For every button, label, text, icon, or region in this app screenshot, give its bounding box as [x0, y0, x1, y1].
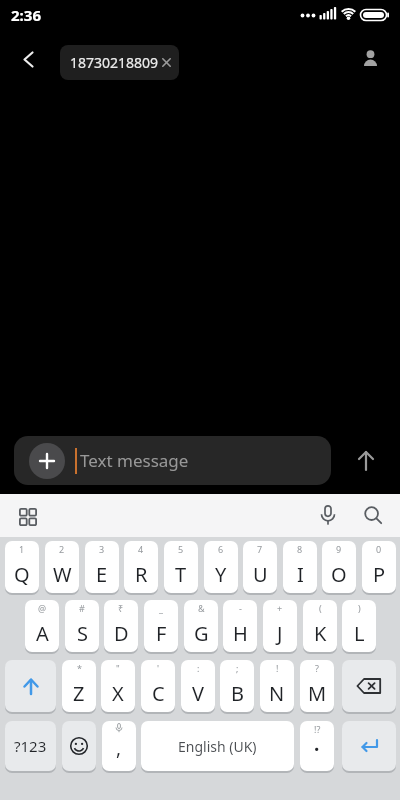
staticText: O: [331, 561, 347, 588]
button[interactable]: _: [144, 600, 178, 652]
staticText: B: [231, 680, 244, 707]
staticText: 7: [257, 543, 263, 555]
staticText: #: [79, 602, 85, 614]
staticText: X: [112, 680, 124, 707]
staticText: I: [297, 561, 304, 588]
button[interactable]: #: [65, 600, 99, 652]
staticText: 6: [218, 543, 224, 555]
staticText: D: [114, 620, 129, 647]
staticText: English (UK): [178, 737, 257, 756]
button[interactable]: [62, 721, 96, 771]
button[interactable]: [5, 660, 56, 712]
staticText: +: [277, 602, 283, 614]
button[interactable]: ?123: [5, 721, 56, 771]
button[interactable]: 3: [85, 541, 119, 593]
staticText: F: [156, 620, 167, 647]
staticText: ₹: [118, 602, 124, 614]
button[interactable]: 6: [204, 541, 238, 593]
button[interactable]: ': [141, 660, 175, 712]
button[interactable]: @: [25, 600, 59, 652]
staticText: 5: [178, 543, 184, 555]
staticText: P: [373, 561, 386, 588]
button[interactable]: +: [263, 600, 297, 652]
button[interactable]: [14, 436, 331, 485]
staticText: N: [269, 680, 285, 707]
staticText: 3: [99, 543, 105, 555]
staticText: ;: [236, 662, 239, 674]
staticText: 2: [59, 543, 65, 555]
button[interactable]: ?: [300, 660, 334, 712]
button[interactable]: ;: [220, 660, 254, 712]
staticText: :: [197, 662, 200, 674]
button[interactable]: [29, 443, 65, 479]
button[interactable]: [320, 505, 336, 526]
staticText: M: [308, 680, 327, 707]
staticText: ?: [315, 662, 319, 674]
button[interactable]: [362, 49, 379, 68]
staticText: H: [233, 620, 248, 647]
staticText: !: [276, 662, 279, 674]
staticText: A: [36, 620, 49, 647]
staticText: _: [159, 602, 163, 614]
staticText: G: [194, 620, 209, 647]
button[interactable]: &: [184, 600, 218, 652]
staticText: 0: [376, 543, 382, 555]
staticText: -: [239, 602, 242, 614]
button[interactable]: :: [181, 660, 215, 712]
button[interactable]: ): [342, 600, 376, 652]
button[interactable]: 0: [362, 541, 396, 593]
button[interactable]: 18730218809: [60, 45, 179, 80]
staticText: !?: [314, 723, 321, 735]
button[interactable]: [342, 721, 396, 771]
staticText: 8: [297, 543, 303, 555]
button[interactable]: *: [62, 660, 96, 712]
staticText: L: [354, 620, 365, 647]
staticText: Y: [215, 561, 227, 588]
staticText: Z: [73, 680, 85, 707]
staticText: (: [319, 602, 322, 614]
staticText: 2:36: [11, 5, 41, 25]
staticText: @: [38, 602, 47, 614]
staticText: .: [314, 731, 320, 757]
button[interactable]: 8: [283, 541, 317, 593]
button[interactable]: 2: [45, 541, 79, 593]
button[interactable]: !?: [300, 721, 334, 771]
staticText: 9: [336, 543, 342, 555]
button[interactable]: [22, 51, 35, 68]
staticText: U: [253, 561, 268, 588]
button[interactable]: 7: [243, 541, 277, 593]
staticText: 18730218809: [70, 53, 159, 72]
staticText: ': [157, 662, 160, 674]
button[interactable]: 4: [124, 541, 158, 593]
button[interactable]: [364, 506, 383, 525]
button[interactable]: English (UK): [141, 721, 294, 771]
staticText: ?123: [14, 736, 47, 756]
button[interactable]: 1: [5, 541, 39, 593]
staticText: *: [77, 662, 82, 674]
staticText: 1: [19, 543, 25, 555]
button[interactable]: -: [223, 600, 257, 652]
button[interactable]: !: [260, 660, 294, 712]
button[interactable]: ₹: [104, 600, 138, 652]
staticText: K: [314, 620, 327, 647]
button[interactable]: [342, 660, 396, 712]
button[interactable]: ,: [102, 721, 136, 771]
staticText: T: [175, 561, 187, 588]
staticText: ): [358, 602, 361, 614]
staticText: R: [135, 561, 148, 588]
staticText: J: [277, 620, 283, 647]
staticText: &: [198, 602, 205, 614]
button[interactable]: [356, 449, 376, 472]
staticText: Q: [14, 561, 30, 588]
staticText: ": [116, 662, 120, 674]
button[interactable]: (: [303, 600, 337, 652]
button[interactable]: ": [101, 660, 135, 712]
staticText: V: [192, 680, 204, 707]
staticText: Text message: [80, 449, 189, 472]
button[interactable]: 5: [164, 541, 198, 593]
button[interactable]: [19, 508, 37, 526]
staticText: C: [152, 680, 165, 707]
staticText: W: [53, 561, 72, 588]
button[interactable]: 9: [322, 541, 356, 593]
staticText: ,: [116, 735, 122, 761]
